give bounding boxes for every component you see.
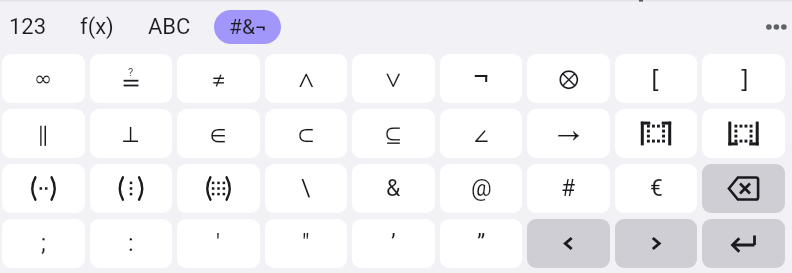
button[interactable]: # xyxy=(527,164,610,213)
staticText: ∧ xyxy=(298,62,315,96)
button[interactable]: ∨ xyxy=(352,54,435,103)
button[interactable]: ∥ xyxy=(2,109,85,158)
button[interactable]: [ xyxy=(615,54,697,103)
staticText: @ xyxy=(471,175,492,202)
button[interactable]: → xyxy=(527,109,610,158)
button[interactable]: Move cursor right xyxy=(615,219,697,268)
staticText: ⊗ xyxy=(558,59,580,98)
button[interactable]: Matrix top xyxy=(615,109,697,158)
staticText: #&¬ xyxy=(229,15,267,40)
button[interactable]: ? xyxy=(90,54,172,103)
button[interactable]: ∞ xyxy=(2,54,85,103)
button[interactable]: f(x) xyxy=(80,10,114,44)
button[interactable]: Move cursor left xyxy=(527,219,610,268)
button[interactable]: ⊆ xyxy=(352,109,435,158)
staticText: ' xyxy=(216,230,221,257)
button[interactable]: 3 by 3 matrix xyxy=(177,164,260,213)
staticText: € xyxy=(650,175,663,202)
staticText: ABC xyxy=(148,14,191,40)
button[interactable]: & xyxy=(352,164,435,213)
staticText: & xyxy=(386,175,401,202)
staticText: " xyxy=(302,230,310,257)
staticText: ∨ xyxy=(385,62,402,96)
button[interactable]: ⊗ xyxy=(527,54,610,103)
staticText: ? xyxy=(128,66,134,79)
button[interactable]: ≠ xyxy=(177,54,260,103)
staticText: 123 xyxy=(9,14,47,40)
staticText: [ xyxy=(651,65,661,94)
staticText: f(x) xyxy=(80,14,114,40)
button[interactable]: : xyxy=(90,219,172,268)
staticText: ∈ xyxy=(210,117,227,151)
button[interactable]: Matrix bottom xyxy=(702,109,785,158)
staticText: ∥ xyxy=(39,117,48,151)
button[interactable]: @ xyxy=(440,164,522,213)
staticText: ⊂ xyxy=(298,117,315,151)
staticText: ∠ xyxy=(474,117,489,151)
button[interactable]: 1 by 2 matrix xyxy=(2,164,85,213)
button[interactable]: ⊥ xyxy=(90,109,172,158)
button[interactable]: Not xyxy=(440,54,522,103)
button[interactable]: 123 xyxy=(9,10,47,44)
button[interactable]: \ xyxy=(265,164,347,213)
button[interactable]: " xyxy=(265,219,347,268)
button[interactable]: #&¬ xyxy=(214,10,281,44)
button[interactable]: ' xyxy=(177,219,260,268)
staticText: ≠ xyxy=(212,62,226,96)
staticText: \ xyxy=(301,175,311,202)
staticText: ∞ xyxy=(34,66,53,92)
button[interactable]: ; xyxy=(2,219,85,268)
button[interactable]: ∈ xyxy=(177,109,260,158)
button[interactable]: ⊂ xyxy=(265,109,347,158)
button[interactable]: ” xyxy=(440,219,522,268)
staticText: ] xyxy=(739,65,749,94)
staticText: # xyxy=(561,175,576,202)
staticText: → xyxy=(557,117,581,151)
staticText: ’ xyxy=(391,230,396,257)
button[interactable]: ] xyxy=(702,54,785,103)
staticText: ” xyxy=(477,230,486,257)
staticText: ; xyxy=(41,230,46,257)
button[interactable]: Enter xyxy=(702,219,785,268)
button[interactable]: 2 by 1 matrix xyxy=(90,164,172,213)
staticText: ⊥ xyxy=(122,117,140,151)
button[interactable]: € xyxy=(615,164,697,213)
staticText: : xyxy=(128,230,134,257)
staticText: ⊆ xyxy=(385,117,402,151)
button[interactable]: ABC xyxy=(148,10,191,44)
button[interactable]: More options xyxy=(748,5,792,49)
button[interactable]: Backspace xyxy=(702,164,785,213)
button[interactable]: ’ xyxy=(352,219,435,268)
button[interactable]: ∧ xyxy=(265,54,347,103)
button[interactable]: ∠ xyxy=(440,109,522,158)
